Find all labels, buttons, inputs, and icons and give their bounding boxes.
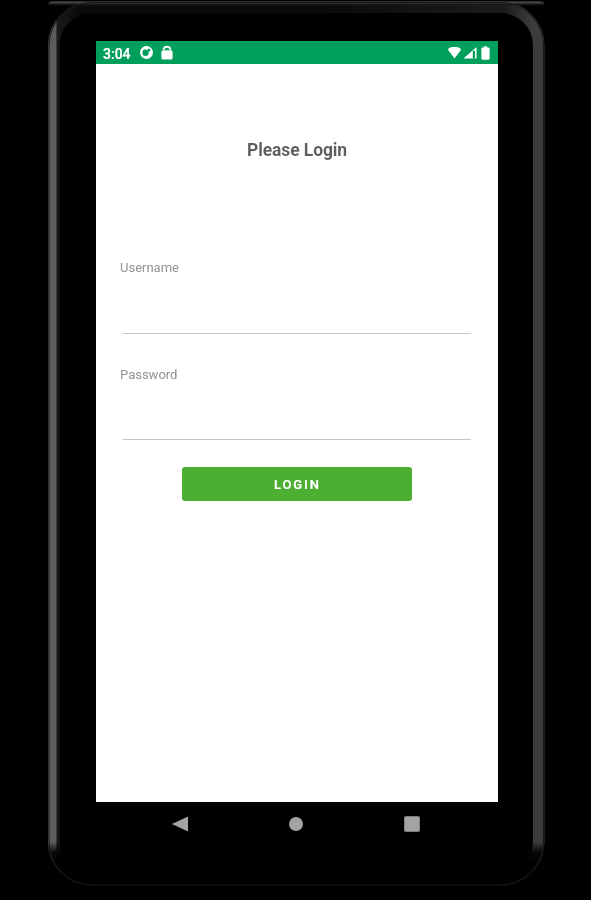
- staticText: Please Login: [96, 140, 498, 161]
- button[interactable]: Back: [167, 811, 193, 837]
- staticText: LOGIN: [274, 477, 321, 492]
- staticText: Username: [120, 260, 179, 275]
- button[interactable]: Recent apps: [399, 811, 425, 837]
- button[interactable]: Username: [120, 260, 471, 335]
- button[interactable]: Home: [283, 811, 309, 837]
- button[interactable]: Password: [120, 367, 471, 441]
- staticText: 3:04: [103, 46, 131, 62]
- button[interactable]: LOGIN: [182, 467, 412, 501]
- staticText: Password: [120, 367, 178, 382]
